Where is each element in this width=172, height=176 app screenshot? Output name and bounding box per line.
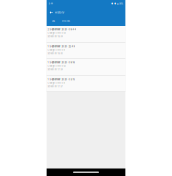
button[interactable]: 1 September 2020 22:49 <box>47 43 125 59</box>
staticText: Charge time 0:01 <box>47 82 65 84</box>
staticText: 2 September 2020 09:44 <box>47 28 76 31</box>
staticText: History <box>55 11 64 14</box>
staticText: Screen on 18:04 <box>47 35 62 38</box>
staticText: Charge time 0:03 <box>47 32 65 34</box>
staticText: Screen on 18:00 <box>47 52 62 55</box>
staticText: LOG <box>51 20 54 22</box>
button[interactable]: 2 September 2020 09:44 <box>47 26 125 43</box>
staticText: Screen on 17:57 <box>47 85 62 88</box>
staticText: ● ● ▮ 98% <box>111 3 123 5</box>
staticText: Charge time 0:02 <box>47 65 65 67</box>
staticText: 1 September 2020 22:49 <box>47 45 74 48</box>
staticText: SESSIONS <box>62 20 70 22</box>
button[interactable]: LOG <box>48 17 58 26</box>
button[interactable]: SESSIONS <box>58 17 74 26</box>
staticText: Screen on 17:59 <box>47 68 62 71</box>
button[interactable]: Back <box>48 7 55 17</box>
button[interactable]: History <box>55 7 64 17</box>
staticText: 9:44 <box>49 3 53 5</box>
staticText: 1 September 2020 09:16 <box>47 61 74 64</box>
button[interactable]: 1 September 2020 09:16 <box>47 59 125 76</box>
button[interactable]: 1 September 2020 03:15 <box>47 76 125 92</box>
staticText: Charge time 0:01 <box>47 49 65 51</box>
staticText: 1 September 2020 03:15 <box>47 78 74 81</box>
